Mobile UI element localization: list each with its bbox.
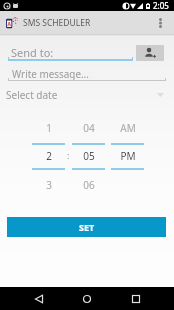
staticText: SET	[79, 221, 95, 233]
button[interactable]: Pick contact	[136, 45, 164, 61]
button[interactable]: More options	[150, 11, 170, 34]
staticText: Send to:	[11, 45, 54, 60]
staticText: 3	[46, 178, 52, 189]
button[interactable]: Home	[75, 287, 98, 310]
staticText: :	[67, 149, 70, 160]
staticText: 2	[46, 149, 52, 160]
button[interactable]: Back	[27, 287, 50, 310]
staticText: 05	[83, 149, 95, 160]
staticText: SMS SCHEDULER	[23, 17, 91, 29]
staticText: Write message...	[12, 67, 89, 80]
staticText: 1	[46, 121, 52, 132]
staticText: 04	[83, 121, 95, 132]
staticText: Select date	[6, 88, 58, 102]
staticText: AM	[120, 121, 136, 132]
staticText: PM	[120, 149, 136, 160]
button[interactable]: SET	[7, 217, 166, 237]
staticText: 2:05	[153, 0, 169, 11]
staticText: 06	[83, 178, 95, 189]
button[interactable]: Select date	[0, 86, 174, 103]
button[interactable]: Recent apps	[124, 287, 147, 310]
